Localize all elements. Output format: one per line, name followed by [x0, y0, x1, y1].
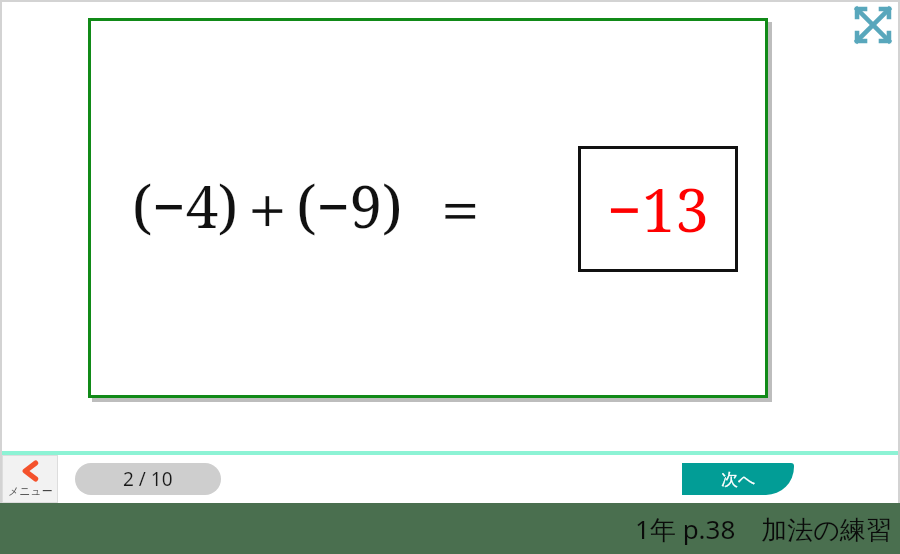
button[interactable]: メニュー	[2, 455, 58, 503]
button[interactable]: 全画面表示	[849, 1, 897, 49]
staticText: 1年 p.38 加法の練習	[635, 511, 892, 547]
staticText: (−4)＋(−9) ＝	[132, 166, 490, 245]
button[interactable]: 2 / 10	[75, 463, 221, 495]
staticText: メニュー	[8, 484, 53, 498]
button[interactable]: 次へ	[682, 463, 794, 495]
staticText: −13	[607, 168, 709, 250]
staticText: 次へ	[721, 469, 756, 490]
staticText: 2 / 10	[123, 466, 173, 492]
